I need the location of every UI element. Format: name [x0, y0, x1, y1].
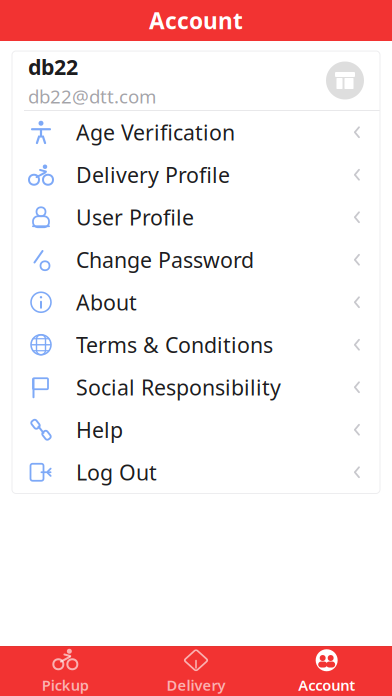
- staticText: Pickup: [42, 675, 89, 695]
- staticText: Account: [149, 5, 243, 35]
- staticText: Help: [76, 416, 123, 444]
- button[interactable]: Pickup: [0, 646, 131, 696]
- staticText: Change Password: [76, 246, 254, 274]
- staticText: Terms & Conditions: [76, 331, 273, 359]
- staticText: Delivery: [166, 675, 225, 695]
- staticText: Account: [298, 675, 355, 695]
- staticText: Age Verification: [76, 118, 235, 146]
- button[interactable]: Change Password: [12, 238, 380, 281]
- button[interactable]: About: [12, 281, 380, 323]
- staticText: About: [76, 288, 137, 316]
- button[interactable]: User Profile: [12, 196, 380, 238]
- button[interactable]: Terms & Conditions: [12, 323, 380, 366]
- staticText: Social Responsibility: [76, 373, 281, 401]
- staticText: db22: [28, 52, 78, 81]
- staticText: Delivery Profile: [76, 161, 230, 189]
- button[interactable]: Age Verification: [12, 111, 380, 153]
- button[interactable]: Delivery: [131, 646, 261, 696]
- staticText: db22@dtt.com: [28, 84, 156, 109]
- staticText: User Profile: [76, 203, 194, 231]
- button[interactable]: Social Responsibility: [12, 366, 380, 408]
- button[interactable]: Help: [12, 408, 380, 451]
- staticText: Log Out: [76, 458, 157, 486]
- button[interactable]: Delivery Profile: [12, 153, 380, 196]
- button[interactable]: Log Out: [12, 451, 380, 493]
- button[interactable]: db22: [12, 51, 380, 110]
- button[interactable]: Account: [261, 646, 392, 696]
